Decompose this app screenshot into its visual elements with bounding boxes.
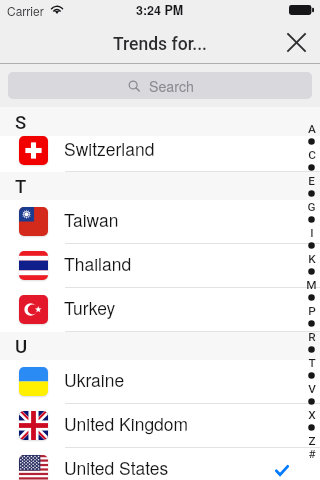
staticText: Thailand [64, 251, 132, 276]
staticText: C [308, 148, 316, 161]
staticText: Search [149, 76, 194, 96]
staticText: U [15, 336, 28, 358]
staticText: Z [308, 434, 316, 447]
button[interactable]: Turkey [0, 288, 320, 332]
button[interactable]: Section index [303, 122, 320, 460]
staticText: Carrier [7, 2, 44, 19]
staticText: I [310, 226, 314, 239]
staticText: 3:24 PM [136, 1, 184, 19]
staticText: T [308, 356, 316, 369]
staticText: T [15, 176, 27, 198]
staticText: R [308, 330, 316, 343]
staticText: M [306, 278, 317, 291]
staticText: United States [64, 455, 169, 480]
staticText: Switzerland [64, 136, 155, 161]
button[interactable]: Thailand [0, 244, 320, 288]
button[interactable]: Taiwan [0, 200, 320, 244]
button[interactable]: Close [274, 20, 318, 64]
button[interactable]: United States [0, 448, 320, 480]
staticText: V [308, 382, 316, 395]
staticText: E [308, 174, 315, 187]
staticText: G [307, 200, 316, 213]
staticText: A [308, 122, 316, 135]
staticText: United Kingdom [64, 411, 189, 436]
staticText: P [308, 304, 316, 317]
staticText: Taiwan [64, 207, 119, 232]
staticText: Trends for... [113, 34, 207, 55]
staticText: X [308, 408, 316, 421]
staticText: K [308, 252, 316, 265]
button[interactable]: United Kingdom [0, 404, 320, 448]
staticText: Ukraine [64, 367, 125, 392]
button[interactable]: Ukraine [0, 360, 320, 404]
button[interactable]: Search [8, 72, 312, 99]
staticText: Turkey [64, 295, 116, 320]
staticText: S [15, 112, 27, 134]
staticText: # [308, 447, 316, 460]
